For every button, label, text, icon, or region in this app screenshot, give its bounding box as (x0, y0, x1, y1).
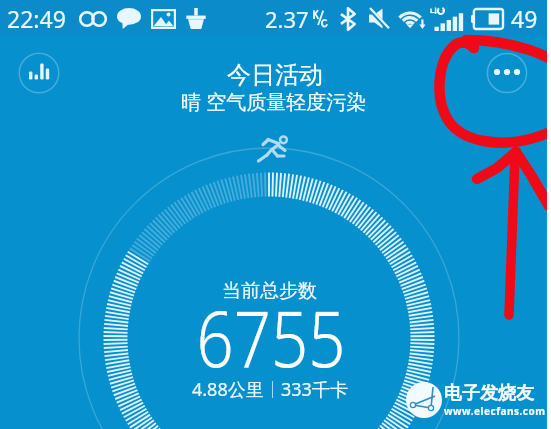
staticText: 2.37 (265, 4, 309, 34)
staticText: 333千卡 (281, 377, 348, 402)
staticText: 4.88公里 (192, 377, 264, 402)
button[interactable]: Statistics (18, 52, 60, 94)
staticText: 49 (511, 3, 538, 34)
staticText: 6755 (197, 285, 345, 390)
staticText: 当前总步数 (222, 279, 317, 303)
button[interactable]: More options (486, 52, 528, 94)
staticText: www.elecfans.com (444, 404, 546, 418)
staticText: 22:49 (7, 3, 66, 34)
staticText: 电子发烧友 (444, 382, 534, 405)
staticText: 今日活动 (227, 60, 323, 90)
staticText: 晴 空气质量轻度污染 (181, 88, 367, 115)
